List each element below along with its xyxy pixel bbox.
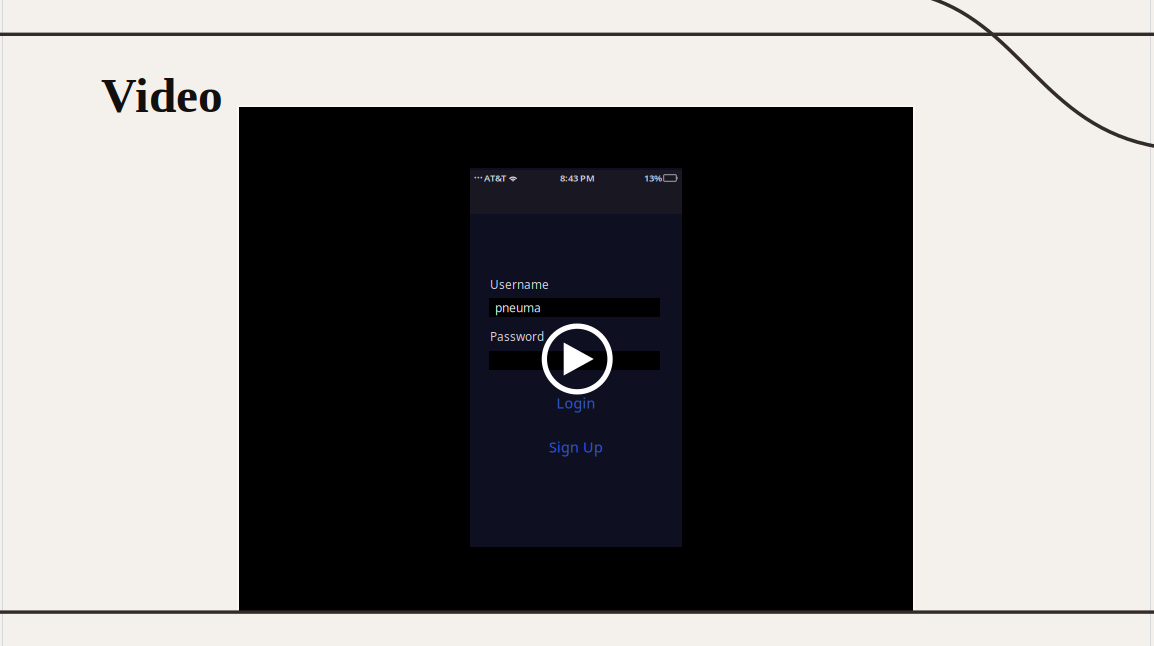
staticText: Login — [556, 393, 595, 413]
staticText: Username — [490, 276, 549, 292]
staticText: 8:43 PM — [560, 172, 595, 184]
staticText: Sign Up — [549, 437, 603, 457]
staticText: Password — [490, 328, 544, 344]
button[interactable]: Sign Up — [470, 440, 682, 454]
button[interactable]: Play video — [239, 107, 913, 613]
staticText: Video — [101, 68, 223, 123]
staticText: pneuma — [495, 299, 541, 316]
staticText: ••• — [474, 174, 483, 182]
button[interactable]: Login — [470, 396, 682, 410]
staticText: AT&T — [484, 172, 506, 184]
staticText: 13% — [644, 172, 662, 184]
